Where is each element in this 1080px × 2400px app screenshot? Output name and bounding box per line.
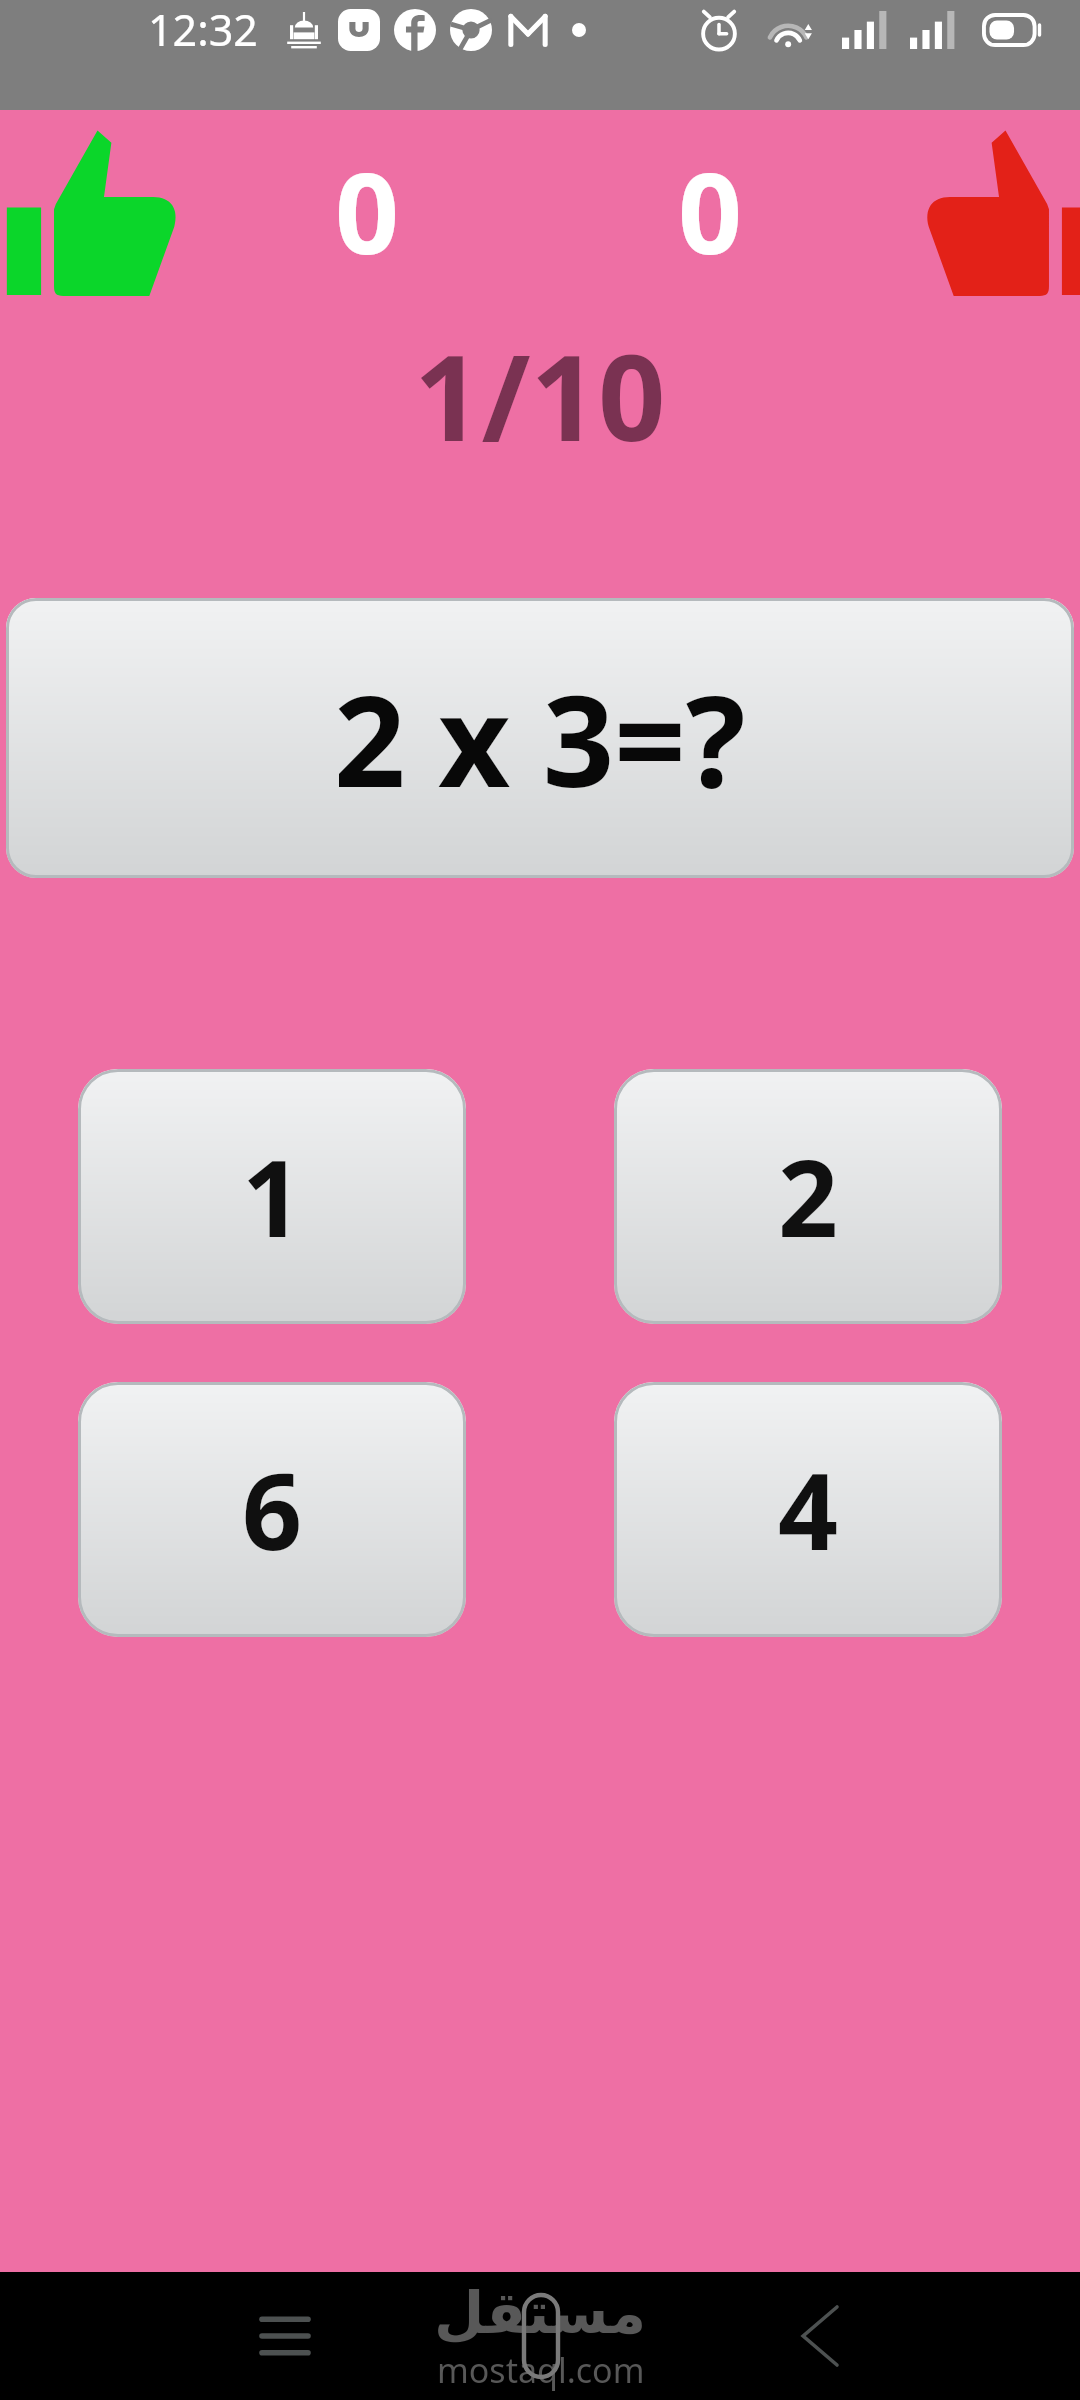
button[interactable]: Correct answers [5, 127, 190, 302]
staticText: 0 [678, 134, 743, 287]
staticText: 1 [242, 1125, 303, 1268]
staticText: 6 [242, 1438, 303, 1581]
staticText: 4 [778, 1438, 839, 1581]
button[interactable]: 2 [614, 1069, 1002, 1324]
button[interactable]: 4 [614, 1382, 1002, 1637]
button[interactable]: Home [524, 2295, 558, 2377]
staticText: مستقل [434, 2279, 647, 2347]
staticText: 2 [778, 1125, 839, 1268]
button[interactable]: 6 [78, 1382, 466, 1637]
button[interactable]: 2 x 3=? [6, 598, 1074, 878]
button[interactable]: Recent apps [220, 2272, 350, 2400]
staticText: 0 [335, 134, 400, 287]
staticText: 2 x 3=? [334, 653, 746, 823]
staticText: 12:32 [148, 0, 258, 59]
staticText: mostaql.com [437, 2347, 645, 2393]
staticText: 1/10 [414, 315, 666, 476]
button[interactable]: Back [754, 2272, 884, 2400]
button[interactable]: Wrong answers [913, 127, 1080, 302]
button[interactable]: 1 [78, 1069, 466, 1324]
